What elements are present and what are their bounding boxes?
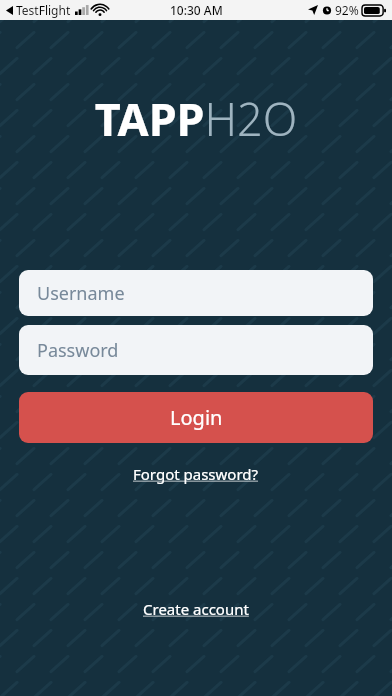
- button[interactable]: Forgot password?: [127, 460, 265, 488]
- staticText: Create account: [143, 599, 249, 619]
- button[interactable]: Username: [19, 270, 373, 316]
- staticText: Password: [37, 338, 119, 363]
- staticText: TAPPH2O: [0, 88, 392, 149]
- staticText: Login: [170, 404, 223, 431]
- button[interactable]: Password: [19, 325, 373, 375]
- staticText: Forgot password?: [133, 464, 259, 484]
- staticText: 10:30 AM: [170, 2, 223, 18]
- staticText: TestFlight: [16, 2, 71, 18]
- staticText: 92%: [335, 2, 359, 18]
- staticText: Username: [37, 281, 125, 306]
- button[interactable]: Create account: [137, 595, 255, 623]
- button[interactable]: Login: [19, 392, 373, 443]
